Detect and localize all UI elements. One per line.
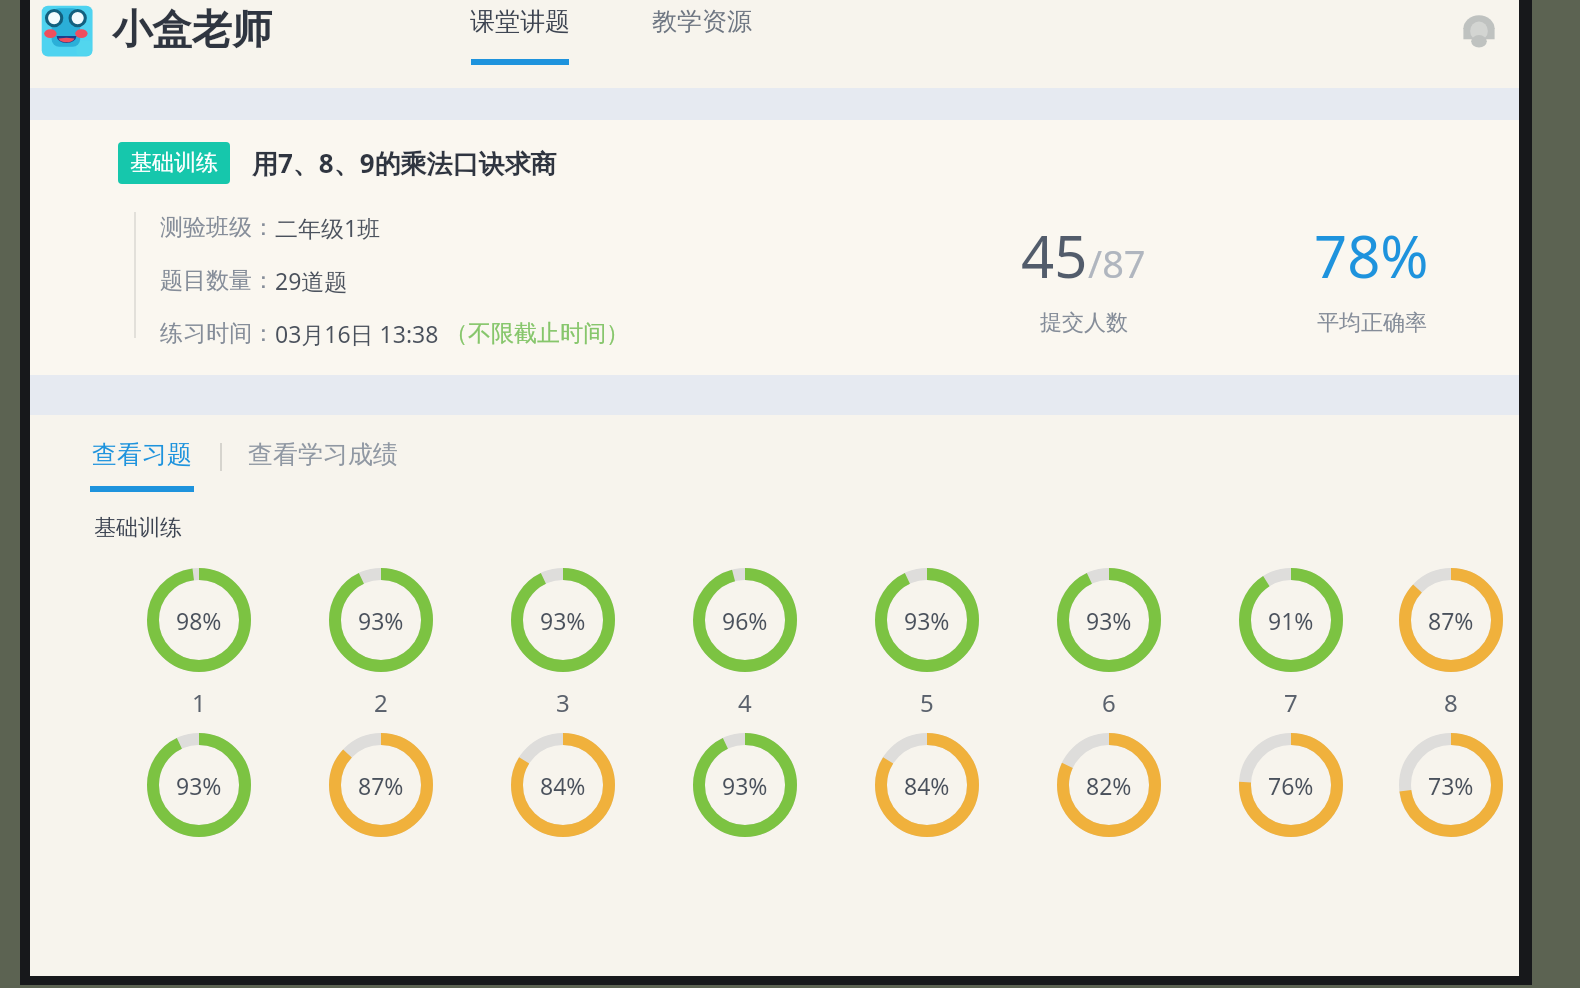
button[interactable]: 教学资源 [642,0,762,71]
staticText: 1 [192,686,206,719]
button[interactable]: 课堂讲题 [460,0,580,71]
button[interactable]: 93% [836,568,1018,719]
button[interactable]: 查看学习成绩 [248,439,398,470]
staticText: 73% [1428,770,1474,801]
staticText: 84% [540,770,586,801]
staticText: 03月16日 13:38 [275,318,445,349]
staticText: 测验班级： [160,213,275,242]
staticText: 29道题 [275,265,348,296]
staticText: 78% [1314,216,1429,295]
staticText: 76% [1268,770,1314,801]
button[interactable]: 96% [654,568,836,719]
staticText: 3 [556,686,570,719]
staticText: 98% [176,605,222,636]
staticText: 91% [1268,605,1314,636]
button[interactable]: 查看习题 [90,439,194,492]
button[interactable]: 98% [108,568,290,719]
staticText: 查看学习成绩 [248,439,398,470]
button[interactable]: 91% [1200,568,1382,719]
staticText: 93% [904,605,950,636]
staticText: 93% [358,605,404,636]
staticText: 2 [374,686,388,719]
button[interactable]: 84% [836,733,1018,837]
button[interactable]: Account [1453,6,1505,58]
staticText: 87% [358,770,404,801]
staticText: 6 [1102,686,1116,719]
button[interactable]: 84% [472,733,654,837]
staticText: 查看习题 [92,439,192,470]
staticText: 93% [1086,605,1132,636]
staticText: 45 [1021,216,1088,295]
button[interactable]: 93% [1018,568,1200,719]
staticText: 93% [540,605,586,636]
staticText: 题目数量： [160,266,275,295]
button[interactable]: 82% [1018,733,1200,837]
button[interactable] [38,2,100,64]
staticText: 教学资源 [652,6,752,37]
staticText: 提交人数 [1040,309,1128,337]
staticText: 二年级1班 [275,212,381,243]
staticText: 93% [722,770,768,801]
staticText: 用7、8、9的乘法口诀求商 [252,145,557,181]
button[interactable]: 93% [290,568,472,719]
staticText: 82% [1086,770,1132,801]
staticText: 4 [738,686,752,719]
staticText: （不限截止时间） [445,319,629,348]
button[interactable]: 76% [1200,733,1382,837]
staticText: 5 [920,686,934,719]
staticText: 96% [722,605,768,636]
button[interactable]: 93% [472,568,654,719]
staticText: 课堂讲题 [470,6,570,37]
staticText: 平均正确率 [1317,309,1427,337]
staticText: 小盒老师 [112,4,272,54]
staticText: 练习时间： [160,319,275,348]
button[interactable]: 73% [1382,733,1519,837]
button[interactable]: 87% [1382,568,1519,719]
staticText: 93% [176,770,222,801]
staticText: 7 [1284,686,1298,719]
button[interactable]: 93% [108,733,290,837]
button[interactable]: 87% [290,733,472,837]
button[interactable]: 93% [654,733,836,837]
staticText: /87 [1088,237,1146,289]
staticText: 基础训练 [94,514,182,542]
staticText: 基础训练 [130,149,218,177]
staticText: 8 [1444,686,1458,719]
staticText: 84% [904,770,950,801]
staticText: 87% [1428,605,1474,636]
